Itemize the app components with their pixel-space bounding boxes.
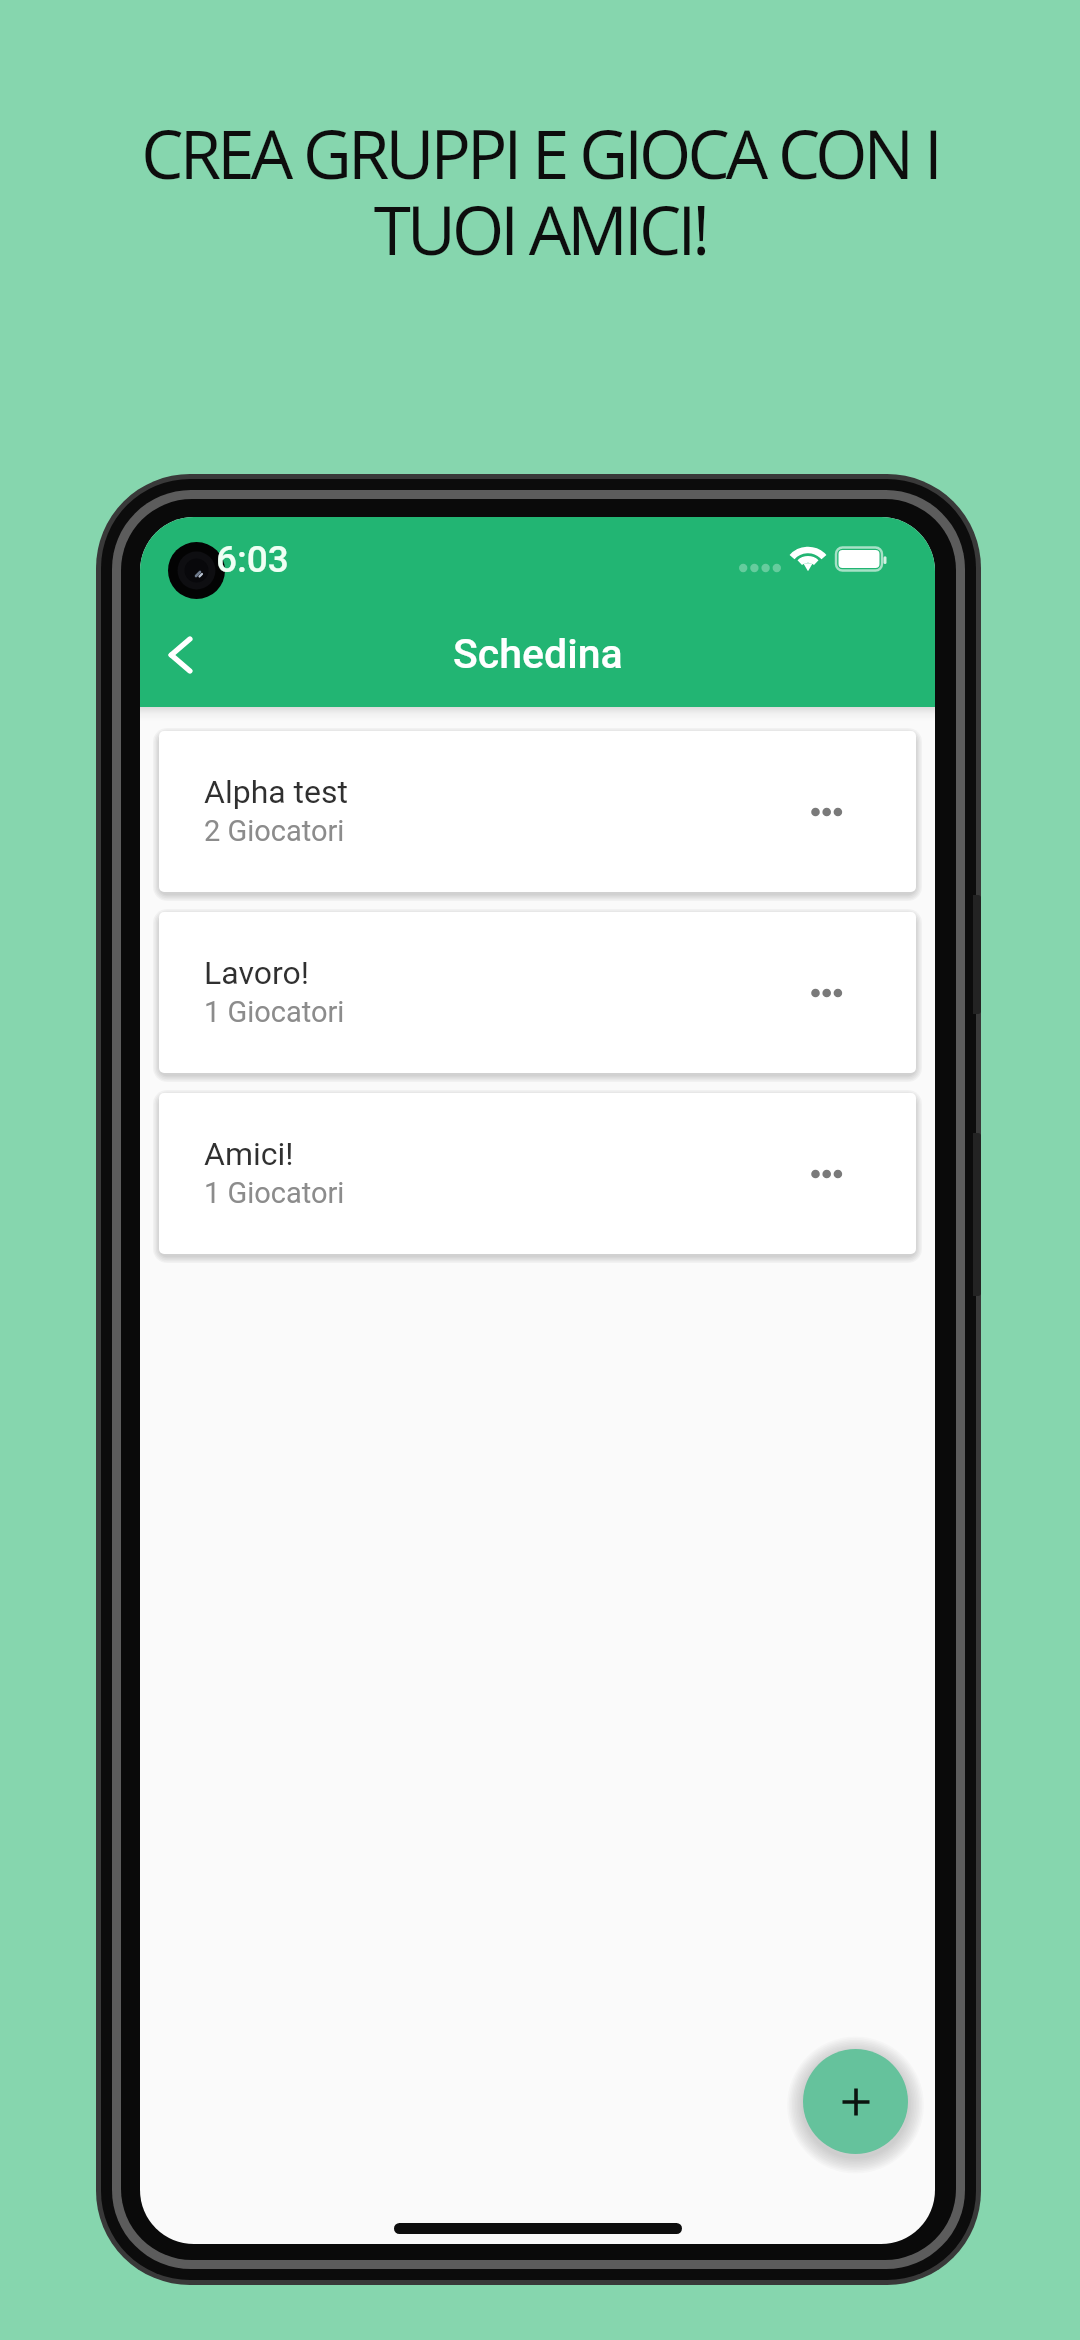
button[interactable]: Altre opzioni [795, 1142, 859, 1206]
staticText: 2 Giocatori [204, 814, 345, 848]
staticText: CREA GRUPPI E GIOCA CON I TUOI AMICI! [141, 107, 939, 274]
button[interactable]: Altre opzioni [795, 961, 859, 1025]
button[interactable]: Crea gruppo [803, 2049, 908, 2154]
staticText: 6:03 [216, 538, 289, 581]
staticText: 1 Giocatori [204, 1176, 345, 1210]
staticText: Alpha test [204, 773, 349, 811]
staticText: Amici! [204, 1135, 294, 1173]
button[interactable]: Altre opzioni [795, 780, 859, 844]
staticText: Schedina [453, 630, 623, 678]
button[interactable]: Indietro [142, 617, 218, 693]
staticText: Lavoro! [204, 954, 309, 992]
button[interactable]: Amici! [159, 1093, 916, 1254]
button[interactable]: Alpha test [159, 731, 916, 892]
staticText: 1 Giocatori [204, 995, 345, 1029]
button[interactable]: Lavoro! [159, 912, 916, 1073]
